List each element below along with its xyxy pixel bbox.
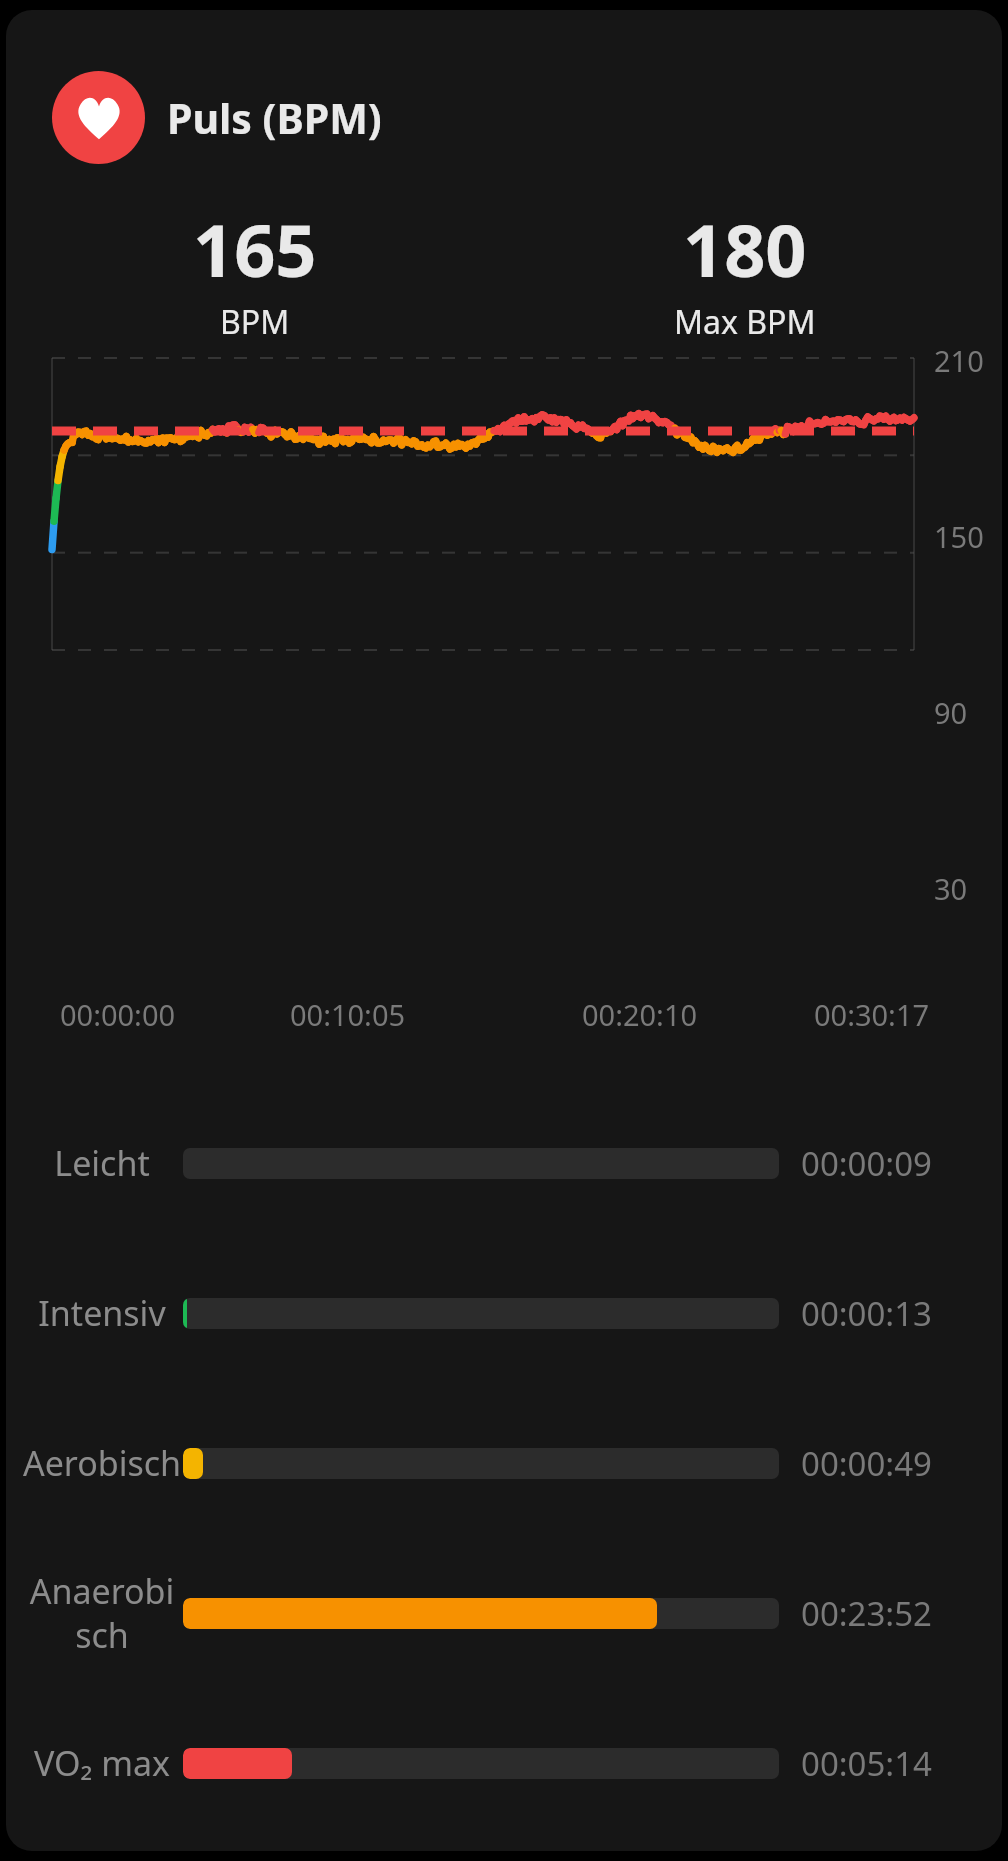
staticText: 00:00:09 (801, 1141, 932, 1186)
staticText: BPM (220, 300, 290, 344)
staticText: 00:23:52 (801, 1591, 932, 1636)
staticText: 180 (683, 200, 807, 298)
button[interactable]: Intensiv (6, 1238, 1002, 1388)
staticText: Anaerobisch (22, 1568, 182, 1658)
staticText: 90 (934, 693, 968, 732)
staticText: 00:05:14 (801, 1741, 932, 1786)
staticText: 00:00:49 (801, 1441, 932, 1486)
staticText: 00:10:05 (290, 995, 406, 1034)
button[interactable]: Leicht (6, 1088, 1002, 1238)
button[interactable]: VO₂ max (6, 1688, 1002, 1838)
button[interactable]: 165 (6, 200, 504, 344)
staticText: 30 (934, 869, 968, 908)
staticText: Intensiv (22, 1290, 182, 1336)
other: Heart rate (52, 71, 145, 164)
staticText: 00:00:13 (801, 1291, 932, 1336)
staticText: Aerobisch (22, 1440, 182, 1486)
staticText: 00:20:10 (582, 995, 698, 1034)
button[interactable]: Anaerobisch (6, 1538, 1002, 1688)
staticText: VO₂ max (22, 1740, 182, 1786)
staticText: Max BPM (674, 300, 816, 344)
staticText: 165 (193, 200, 317, 298)
staticText: Puls (BPM) (167, 90, 382, 146)
staticText: 150 (934, 517, 984, 556)
button[interactable]: Aerobisch (6, 1388, 1002, 1538)
button[interactable]: Heart rate (52, 71, 382, 164)
staticText: 00:30:17 (814, 995, 930, 1034)
button[interactable]: 180 (496, 200, 994, 344)
staticText: 210 (934, 341, 984, 380)
staticText: Leicht (22, 1140, 182, 1186)
staticText: 00:00:00 (60, 995, 176, 1034)
